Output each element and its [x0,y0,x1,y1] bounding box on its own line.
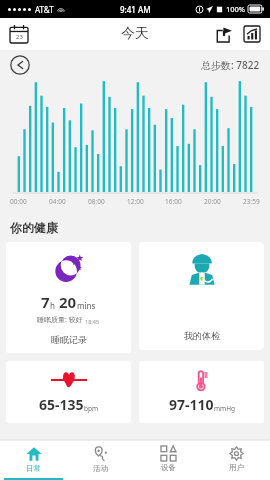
staticText: 总步数: 7822 [201,58,260,72]
button[interactable]: 设备 [134,441,202,477]
staticText: 97-110 [169,395,214,414]
button[interactable]: 65-135 [6,361,131,423]
button[interactable]: Statistics [242,24,262,44]
button[interactable]: 日常 [0,441,67,477]
staticText: 65-135 [39,395,84,414]
button[interactable]: 97-110 [139,361,264,423]
staticText: 100% [226,4,246,14]
staticText: 9:41 AM [120,4,151,15]
button[interactable]: Calendar [8,23,30,45]
staticText: 16:00 [165,197,182,206]
button[interactable]: 我的体检 [139,242,264,350]
staticText: 睡眠质量: 较好 [37,315,83,325]
staticText: 20:00 [204,197,221,206]
staticText: 活动 [93,464,108,473]
staticText: h [50,300,55,311]
staticText: 20 [59,292,77,312]
staticText: 设备 [161,463,176,472]
staticText: AT&T [35,4,54,15]
staticText: 日常 [26,464,41,473]
staticText: 今天 [121,25,149,43]
button[interactable]: Back [10,55,30,75]
button[interactable]: 用户 [202,441,270,477]
staticText: 7 [41,292,50,312]
button[interactable]: Share [214,24,234,44]
button[interactable]: 7 [6,242,131,353]
staticText: mins [77,300,96,311]
staticText: bpm [84,404,99,413]
staticText: 用户 [229,463,244,472]
staticText: 00:00 [10,197,27,206]
staticText: 你的健康 [10,220,58,235]
staticText: 我的体检 [184,330,220,341]
staticText: mmHg [214,404,235,413]
staticText: 08:00 [88,197,105,206]
staticText: 23:59 [243,197,260,206]
staticText: 04:00 [49,197,66,206]
button[interactable]: 活动 [67,441,134,477]
staticText: 18:45 [85,318,100,325]
staticText: 23 [16,33,23,41]
staticText: 睡眠记录 [51,334,87,345]
staticText: 12:00 [127,197,144,206]
